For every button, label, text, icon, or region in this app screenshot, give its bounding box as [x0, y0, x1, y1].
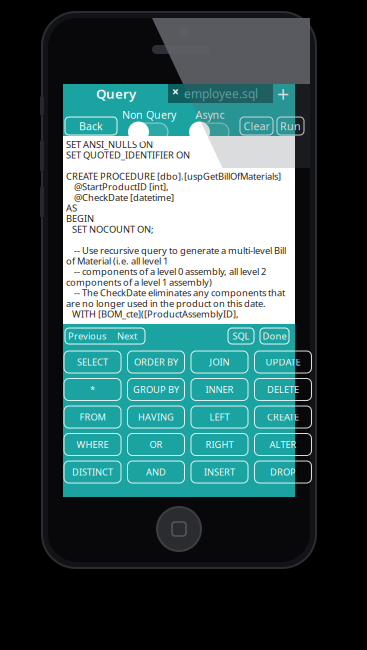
staticText: AND	[146, 466, 166, 478]
staticText: Clear	[243, 119, 269, 133]
staticText: Previous	[68, 330, 106, 342]
staticText: JOIN	[209, 356, 229, 368]
button[interactable]: Run	[277, 117, 304, 135]
button[interactable]: Previous	[65, 328, 109, 344]
button[interactable]: DROP	[254, 461, 311, 483]
button[interactable]: Close Query tab	[169, 85, 182, 98]
button[interactable]: JOIN	[191, 351, 248, 373]
staticText: components of a level 1 assembly)	[66, 276, 212, 288]
staticText: GROUP BY	[133, 383, 179, 396]
staticText: -- components of a level 0 assembly, all…	[66, 265, 266, 278]
button[interactable]: ALTER	[254, 433, 311, 455]
staticText: DELETE	[267, 383, 299, 396]
button[interactable]: DELETE	[254, 378, 311, 400]
staticText: employee.sql	[184, 85, 258, 101]
staticText: Next	[117, 330, 137, 342]
button[interactable]: Non Query	[130, 123, 168, 141]
button[interactable]: GROUP BY	[127, 378, 184, 400]
button[interactable]: Clear	[240, 117, 273, 135]
button[interactable]: Back	[65, 117, 117, 135]
staticText: +	[277, 79, 289, 108]
button[interactable]: AND	[127, 461, 184, 483]
staticText: FROM	[79, 411, 105, 423]
staticText: BEGIN	[66, 212, 94, 225]
staticText: CREATE	[267, 411, 299, 423]
button[interactable]: INNER	[191, 378, 248, 400]
staticText: ALTER	[269, 438, 296, 451]
button[interactable]: Query	[64, 84, 168, 103]
button[interactable]: INSERT	[191, 461, 248, 483]
button[interactable]: Next	[109, 328, 145, 344]
staticText: Back	[79, 119, 103, 133]
staticText: SQL	[232, 330, 249, 342]
staticText: -- Use recursive query to generate a mul…	[66, 244, 286, 256]
staticText: DROP	[270, 466, 296, 478]
staticText: *	[90, 383, 95, 396]
button[interactable]: HAVING	[127, 406, 184, 428]
button[interactable]: RIGHT	[191, 433, 248, 455]
button[interactable]: Async	[191, 123, 229, 141]
button[interactable]: OR	[127, 433, 184, 455]
staticText: UPDATE	[265, 356, 300, 368]
button[interactable]: New tab	[271, 84, 295, 103]
button[interactable]: SELECT	[64, 351, 121, 373]
button[interactable]: FROM	[64, 406, 121, 428]
button[interactable]: employee.sql	[168, 84, 273, 103]
button[interactable]: ORDER BY	[127, 351, 184, 373]
staticText: Done	[262, 330, 286, 342]
staticText: SET QUOTED_IDENTIFIER ON	[66, 149, 190, 161]
staticText: Async	[195, 107, 224, 122]
staticText: LEFT	[209, 411, 229, 423]
staticText: Run	[280, 119, 301, 133]
staticText: INSERT	[204, 466, 235, 478]
staticText: Query	[96, 85, 136, 102]
staticText: RIGHT	[205, 438, 233, 451]
staticText: WHERE	[76, 438, 108, 451]
staticText: @StartProductID [int],	[66, 180, 169, 193]
staticText: SET NOCOUNT ON;	[66, 223, 154, 235]
button[interactable]: Done	[260, 328, 289, 344]
button[interactable]: WHERE	[64, 433, 121, 455]
staticText: @CheckDate [datetime]	[66, 191, 174, 203]
staticText: SET ANSI_NULLS ON	[66, 138, 153, 150]
button[interactable]: DISTINCT	[64, 461, 121, 483]
button[interactable]: *	[64, 378, 121, 400]
staticText: HAVING	[138, 411, 174, 423]
staticText: -- The CheckDate eliminates any componen…	[66, 286, 285, 299]
staticText: ×	[172, 83, 179, 99]
staticText: ORDER BY	[134, 356, 178, 368]
button[interactable]: UPDATE	[254, 351, 311, 373]
staticText: DISTINCT	[72, 466, 113, 478]
staticText: AS	[66, 202, 77, 214]
staticText: WITH [BOM_cte]([ProductAssemblyID],	[66, 308, 239, 320]
staticText: of Material (i.e. all level 1	[66, 255, 168, 267]
button[interactable]: CREATE	[254, 406, 311, 428]
staticText: OR	[149, 438, 162, 451]
staticText: SELECT	[77, 356, 108, 368]
staticText: are no longer used in the product on thi…	[66, 297, 266, 309]
staticText: INNER	[205, 383, 233, 396]
button[interactable]: LEFT	[191, 406, 248, 428]
button[interactable]: SQL	[228, 328, 254, 344]
staticText: Non Query	[122, 107, 176, 122]
staticText: CREATE PROCEDURE [dbo].[uspGetBillOfMate…	[66, 170, 281, 182]
